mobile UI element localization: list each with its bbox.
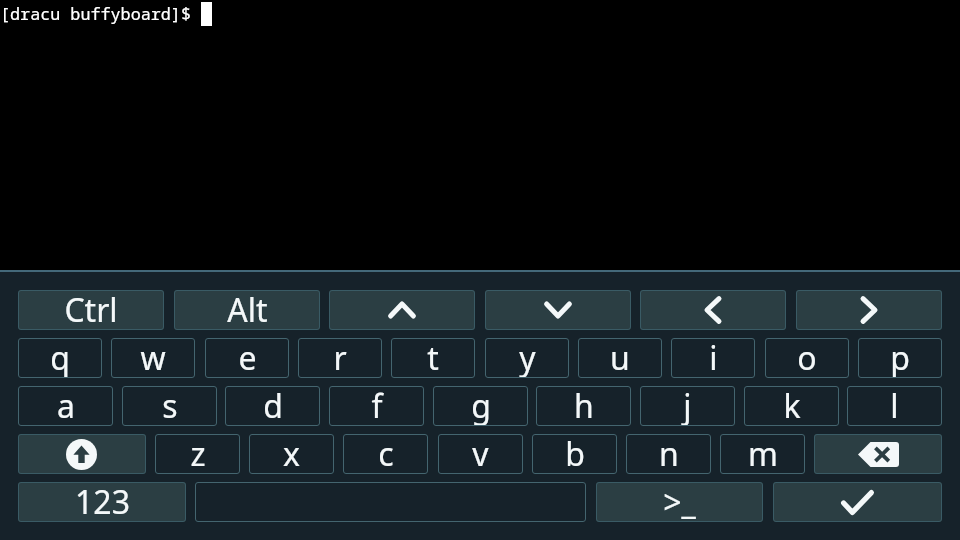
button[interactable]: Space xyxy=(195,482,586,522)
staticText: >_ xyxy=(663,480,696,524)
button[interactable]: t xyxy=(391,338,475,378)
staticText: h xyxy=(574,384,594,428)
staticText: d xyxy=(263,384,283,428)
button[interactable]: e xyxy=(205,338,289,378)
staticText: 123 xyxy=(75,480,130,524)
staticText: t xyxy=(427,336,439,380)
staticText: k xyxy=(783,384,801,428)
button[interactable]: r xyxy=(298,338,382,378)
staticText: i xyxy=(709,336,718,380)
button[interactable]: m xyxy=(720,434,805,474)
button[interactable]: i xyxy=(671,338,755,378)
button[interactable]: y xyxy=(485,338,569,378)
staticText: g xyxy=(471,384,491,428)
button[interactable]: j xyxy=(640,386,735,426)
button[interactable]: Arrow down xyxy=(485,290,631,330)
staticText: a xyxy=(57,384,75,428)
staticText: y xyxy=(519,336,536,380)
button[interactable]: Backspace xyxy=(814,434,942,474)
button[interactable]: f xyxy=(329,386,424,426)
staticText: w xyxy=(140,336,166,380)
staticText: p xyxy=(890,336,910,380)
button[interactable]: b xyxy=(532,434,617,474)
staticText: f xyxy=(371,384,383,428)
staticText: Alt xyxy=(227,288,268,332)
button[interactable]: z xyxy=(155,434,240,474)
staticText: o xyxy=(797,336,817,380)
button[interactable]: s xyxy=(122,386,217,426)
button[interactable]: >_ xyxy=(596,482,763,522)
button[interactable]: Arrow left xyxy=(640,290,786,330)
staticText: e xyxy=(238,336,257,380)
button[interactable]: k xyxy=(744,386,839,426)
staticText: b xyxy=(565,432,585,476)
button[interactable]: l xyxy=(847,386,942,426)
staticText: l xyxy=(890,384,899,428)
button[interactable]: Arrow up xyxy=(329,290,475,330)
staticText: [dracu buffyboard]$ xyxy=(0,2,202,25)
button[interactable]: Ctrl xyxy=(18,290,164,330)
staticText: q xyxy=(50,336,70,380)
staticText: c xyxy=(378,432,394,476)
staticText: v xyxy=(472,432,489,476)
button[interactable]: q xyxy=(18,338,102,378)
staticText: Ctrl xyxy=(64,288,118,332)
staticText: z xyxy=(190,432,206,476)
staticText: x xyxy=(283,432,300,476)
button[interactable]: x xyxy=(249,434,334,474)
button[interactable]: c xyxy=(343,434,428,474)
button[interactable]: v xyxy=(438,434,523,474)
staticText: s xyxy=(162,384,178,428)
button[interactable]: o xyxy=(765,338,849,378)
staticText: m xyxy=(748,432,778,476)
button[interactable]: p xyxy=(858,338,942,378)
button[interactable]: 123 xyxy=(18,482,186,522)
button[interactable]: n xyxy=(626,434,711,474)
button[interactable]: a xyxy=(18,386,113,426)
staticText: r xyxy=(333,336,347,380)
staticText: u xyxy=(610,336,630,380)
button[interactable]: d xyxy=(225,386,320,426)
button[interactable]: h xyxy=(536,386,631,426)
button[interactable]: Alt xyxy=(174,290,320,330)
button[interactable]: Arrow right xyxy=(796,290,942,330)
button[interactable]: w xyxy=(111,338,195,378)
button[interactable]: u xyxy=(578,338,662,378)
button[interactable]: Shift xyxy=(18,434,146,474)
staticText: n xyxy=(659,432,679,476)
button[interactable]: g xyxy=(433,386,528,426)
staticText: j xyxy=(683,384,692,428)
button[interactable]: Enter xyxy=(773,482,942,522)
